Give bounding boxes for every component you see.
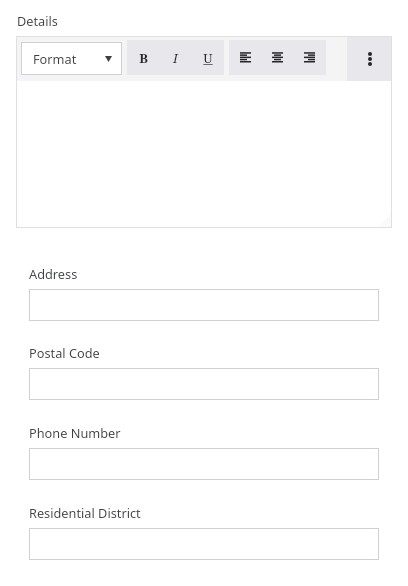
staticText: Phone Number: [29, 424, 121, 441]
button[interactable]: Align left: [229, 41, 262, 75]
staticText: B: [139, 49, 148, 67]
button[interactable]: [29, 368, 379, 400]
button[interactable]: [29, 528, 379, 560]
button[interactable]: [29, 448, 379, 480]
button[interactable]: Align right: [293, 41, 326, 75]
button[interactable]: Underline: [191, 41, 224, 75]
button[interactable]: Bold: [127, 41, 160, 75]
staticText: Address: [29, 265, 78, 282]
button[interactable]: More options: [347, 36, 392, 81]
button[interactable]: Italic: [160, 41, 191, 75]
button[interactable]: [29, 289, 379, 321]
staticText: I: [173, 49, 178, 67]
button[interactable]: Format: [21, 42, 122, 75]
button[interactable]: Align center: [262, 41, 293, 75]
staticText: U: [203, 49, 213, 67]
staticText: Details: [17, 12, 58, 29]
staticText: Residential District: [29, 504, 141, 521]
staticText: Postal Code: [29, 344, 100, 361]
staticText: Format: [33, 50, 77, 67]
